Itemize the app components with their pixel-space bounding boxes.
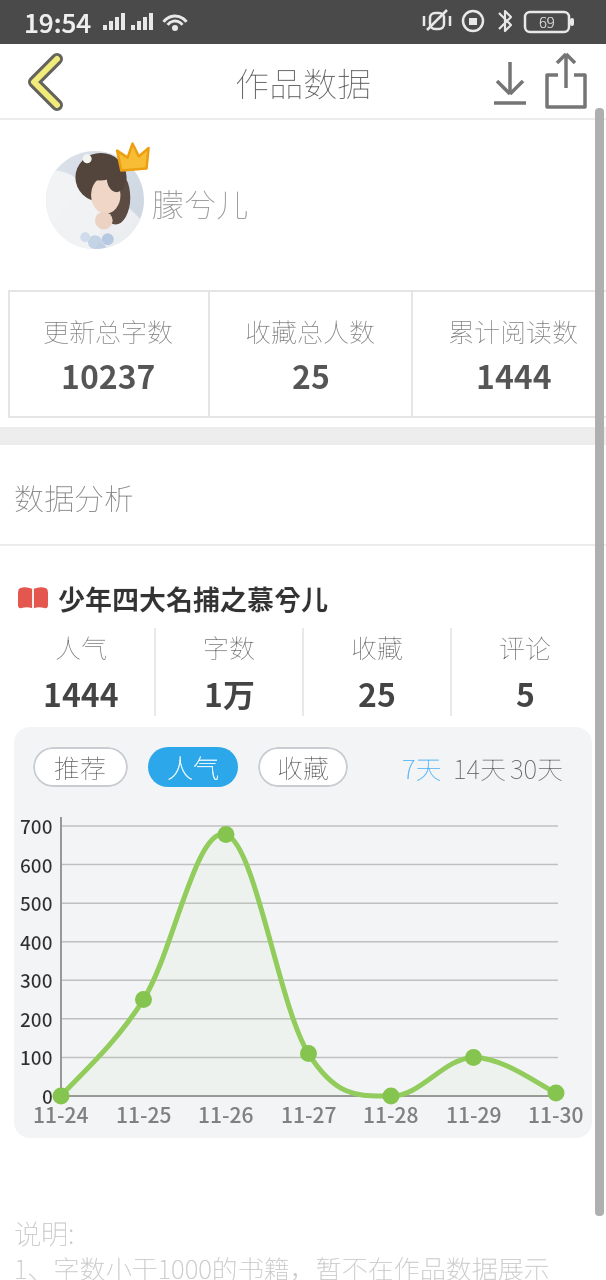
staticText: 11-25	[116, 1099, 172, 1129]
staticText: 11-26	[198, 1099, 254, 1129]
staticText: 25	[358, 670, 396, 716]
staticText: 11-28	[363, 1099, 419, 1129]
staticText: 30天	[510, 749, 564, 785]
staticText: 说明:	[14, 1213, 75, 1252]
staticText: 字数	[203, 628, 256, 666]
staticText: 200	[20, 1005, 53, 1033]
staticText: 300	[20, 966, 53, 994]
staticText: 5	[516, 670, 535, 716]
staticText: 11-27	[281, 1099, 337, 1129]
staticText: 人气	[167, 748, 220, 786]
staticText: 人气	[55, 628, 108, 666]
staticText: 69	[539, 11, 555, 33]
staticText: 累计阅读数	[448, 312, 579, 350]
staticText: 100	[20, 1043, 53, 1071]
staticText: 600	[20, 851, 53, 879]
staticText: 收藏	[351, 628, 404, 666]
staticText: 11-24	[33, 1099, 89, 1129]
staticText: 14天	[453, 749, 507, 785]
staticText: 推荐	[54, 748, 107, 786]
staticText: 25	[292, 352, 330, 398]
staticText: 700	[20, 812, 53, 840]
staticText: 作品数据	[235, 58, 371, 107]
staticText: 11-30	[528, 1099, 584, 1129]
staticText: 少年四大名捕之慕兮儿	[58, 579, 328, 618]
staticText: 19:54	[24, 3, 92, 41]
staticText: 评论	[499, 628, 552, 666]
staticText: 400	[20, 928, 53, 956]
staticText: 1万	[204, 670, 255, 716]
staticText: 数据分析	[14, 475, 134, 518]
staticText: 收藏	[277, 748, 330, 786]
staticText: 1444	[476, 352, 552, 398]
staticText: 7天	[402, 749, 442, 785]
staticText: 1、字数小于1000的书籍，暂不在作品数据展示	[14, 1249, 550, 1280]
staticText: 更新总字数	[43, 312, 174, 350]
staticText: 11-29	[446, 1099, 502, 1129]
staticText: 500	[20, 889, 53, 917]
staticText: 0	[42, 1082, 53, 1110]
staticText: 1444	[43, 670, 119, 716]
staticText: 收藏总人数	[245, 312, 376, 350]
staticText: 朦兮儿	[152, 180, 249, 226]
staticText: 10237	[61, 352, 156, 398]
